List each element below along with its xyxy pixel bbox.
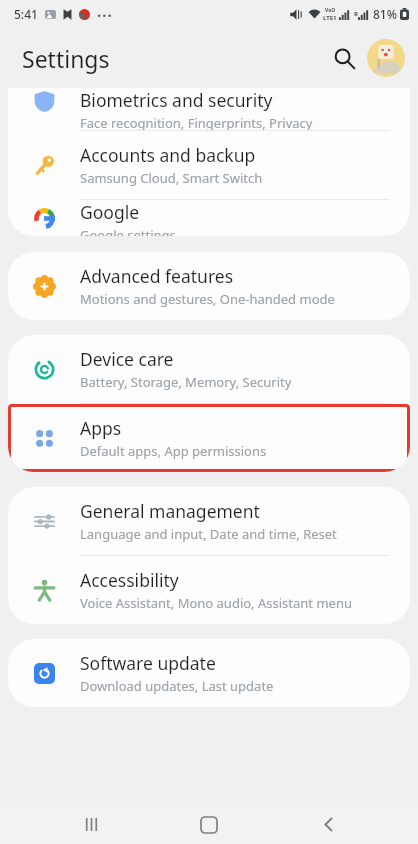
button[interactable]: Account profile bbox=[367, 39, 405, 77]
button[interactable]: Advanced features bbox=[8, 252, 410, 320]
staticText: Google bbox=[80, 200, 140, 224]
button[interactable]: Accounts and backup bbox=[8, 131, 410, 199]
staticText: Accessibility bbox=[80, 568, 179, 592]
staticText: Face recognition, Fingerprints, Privacy bbox=[80, 114, 313, 130]
staticText: Biometrics and security bbox=[80, 88, 273, 112]
button[interactable]: Back bbox=[300, 805, 356, 844]
staticText: Motions and gestures, One-handed mode bbox=[80, 290, 335, 308]
button[interactable]: Biometrics and security bbox=[8, 88, 410, 130]
staticText: Software update bbox=[80, 651, 216, 675]
staticText: 5:41 bbox=[14, 6, 38, 22]
staticText: 81% bbox=[373, 6, 397, 22]
staticText: Settings bbox=[22, 43, 110, 74]
staticText: Google settings bbox=[80, 226, 176, 236]
staticText: Accounts and backup bbox=[80, 143, 256, 167]
staticText: Battery, Storage, Memory, Security bbox=[80, 373, 292, 391]
button[interactable]: Software update bbox=[8, 639, 410, 707]
staticText: General management bbox=[80, 499, 260, 523]
staticText: R bbox=[354, 10, 358, 18]
button[interactable]: General management bbox=[8, 487, 410, 555]
staticText: Default apps, App permissions bbox=[80, 442, 267, 460]
staticText: Language and input, Date and time, Reset bbox=[80, 525, 337, 543]
staticText: Voice Assistant, Mono audio, Assistant m… bbox=[80, 594, 352, 612]
staticText: Download updates, Last update bbox=[80, 677, 274, 695]
staticText: Apps bbox=[80, 416, 122, 440]
staticText: Device care bbox=[80, 347, 174, 371]
button[interactable]: Home bbox=[181, 805, 237, 844]
button[interactable]: Apps bbox=[8, 404, 410, 472]
button[interactable]: Recent apps bbox=[63, 805, 119, 844]
button[interactable]: Accessibility bbox=[8, 556, 410, 624]
staticText: VoO bbox=[325, 7, 336, 14]
button[interactable]: Search bbox=[322, 36, 366, 80]
button[interactable]: Device care bbox=[8, 335, 410, 403]
button[interactable]: Google bbox=[8, 200, 410, 236]
staticText: LTE1 bbox=[323, 14, 337, 22]
staticText: Samsung Cloud, Smart Switch bbox=[80, 169, 263, 187]
staticText: Advanced features bbox=[80, 264, 234, 288]
